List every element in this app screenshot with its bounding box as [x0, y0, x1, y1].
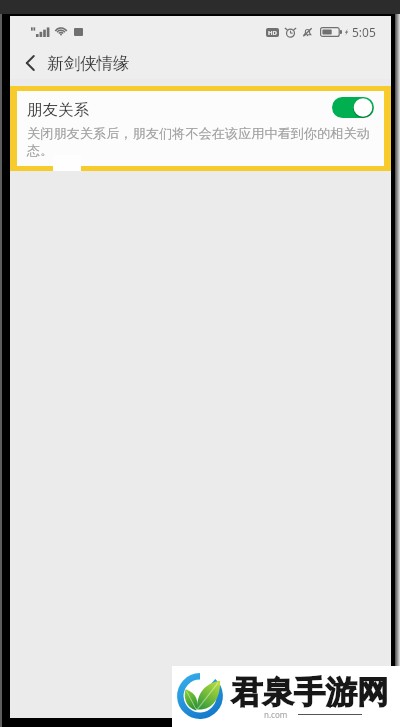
staticText: 新剑侠情缘 [47, 53, 130, 74]
staticText: 君泉手游网 [231, 673, 389, 713]
button[interactable]: 返回 [18, 51, 42, 75]
staticText: HD [268, 29, 277, 37]
staticText: 关闭朋友关系后，朋友们将不会在该应用中看到你的相关动态。 [27, 125, 381, 159]
button[interactable]: 朋友关系 [27, 95, 374, 125]
staticText: 5:05 [352, 24, 376, 40]
staticText: n.com [264, 709, 288, 720]
staticText: 朋友关系 [27, 100, 89, 120]
button[interactable]: 朋友关系开关 [332, 97, 374, 118]
